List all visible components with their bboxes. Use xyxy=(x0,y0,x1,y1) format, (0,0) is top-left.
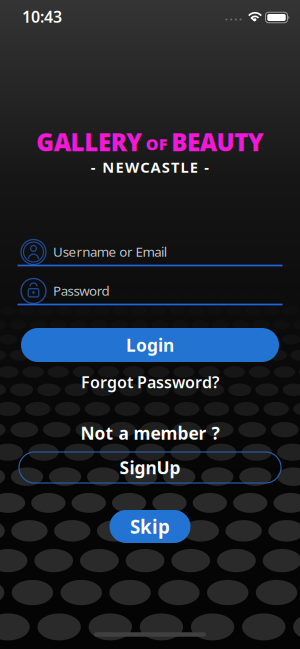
staticText: BEAUTY xyxy=(171,126,264,158)
staticText: OF xyxy=(146,133,168,155)
button[interactable]: Username or Email xyxy=(0,238,300,268)
staticText: Skip xyxy=(130,514,170,539)
button[interactable]: Login xyxy=(21,328,279,362)
button[interactable]: SignUp xyxy=(19,452,281,483)
staticText: Forgot Password? xyxy=(81,371,219,393)
staticText: - NEWCASTLE - xyxy=(91,157,209,177)
button[interactable]: Skip xyxy=(109,510,190,543)
button[interactable]: Forgot Password? xyxy=(81,371,219,393)
staticText: Username or Email xyxy=(53,243,167,260)
staticText: 10:43 xyxy=(22,6,62,27)
button[interactable]: Password xyxy=(0,277,300,307)
staticText: Password xyxy=(53,282,110,299)
staticText: GALLERY xyxy=(36,126,142,158)
staticText: Login xyxy=(126,333,174,356)
staticText: SignUp xyxy=(119,456,180,479)
staticText: Not a member ? xyxy=(80,421,219,444)
